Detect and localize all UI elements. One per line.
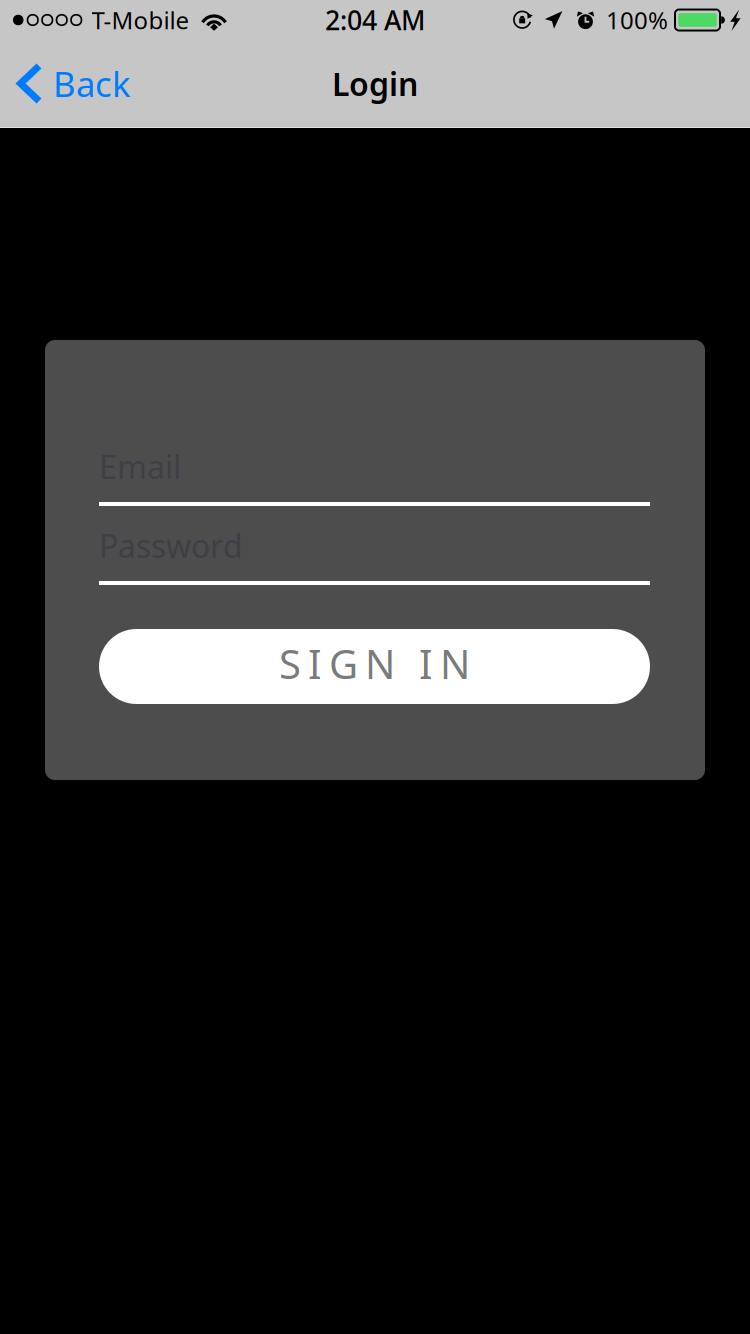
staticText: 100%: [606, 4, 668, 36]
button[interactable]: SIGN IN: [99, 629, 650, 704]
staticText: Email: [99, 445, 181, 488]
staticText: Back: [53, 60, 131, 106]
button[interactable]: Back: [0, 48, 143, 118]
staticText: SIGN IN: [279, 637, 470, 690]
staticText: Password: [99, 524, 243, 567]
button[interactable]: Password: [99, 530, 650, 585]
staticText: 2:04 AM: [325, 2, 425, 38]
button[interactable]: Email: [99, 451, 650, 506]
staticText: Login: [332, 62, 418, 105]
staticText: T-Mobile: [91, 4, 189, 36]
